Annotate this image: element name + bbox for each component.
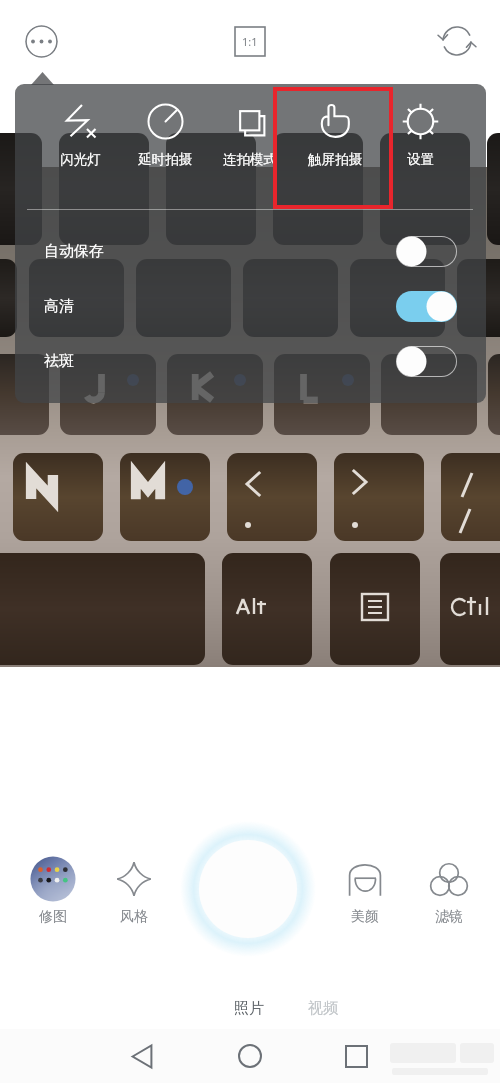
button[interactable]: 自动保存 off xyxy=(396,236,457,267)
button[interactable]: 祛斑 off xyxy=(396,346,457,377)
staticText: 滤镜 xyxy=(435,908,463,926)
button[interactable]: 连拍模式 xyxy=(207,84,293,209)
staticText: 触屏拍摄 xyxy=(308,151,362,168)
button[interactable]: 照片 xyxy=(222,994,275,1022)
staticText: 延时拍摄 xyxy=(138,151,192,168)
staticText: 自动保存 xyxy=(44,242,104,261)
button[interactable]: More options xyxy=(25,25,58,58)
button[interactable]: 自动保存 xyxy=(15,224,486,279)
button[interactable]: 高清 xyxy=(15,279,486,334)
staticText: 视频 xyxy=(308,999,338,1018)
staticText: 美颜 xyxy=(351,908,379,926)
button[interactable]: 视频 xyxy=(296,994,349,1022)
staticText: 闪光灯 xyxy=(60,151,101,168)
button[interactable]: 修图 xyxy=(22,857,84,926)
button[interactable]: Recents xyxy=(332,1032,380,1080)
button[interactable]: 滤镜 xyxy=(418,857,480,926)
button[interactable]: Back xyxy=(118,1032,166,1080)
button[interactable]: 祛斑 xyxy=(15,334,486,389)
staticText: 1:1 xyxy=(242,34,258,49)
staticText: 设置 xyxy=(407,151,434,168)
button[interactable]: 闪光灯 xyxy=(37,84,123,209)
button[interactable]: 设置 xyxy=(377,84,463,209)
staticText: 祛斑 xyxy=(44,352,74,371)
staticText: 高清 xyxy=(44,297,74,316)
button[interactable]: 风格 xyxy=(103,857,165,926)
button[interactable]: 美颜 xyxy=(334,857,396,926)
button[interactable]: Aspect ratio 1:1 xyxy=(235,27,265,56)
button[interactable]: 高清 on xyxy=(396,291,457,322)
staticText: 连拍模式 xyxy=(223,151,277,168)
staticText: 修图 xyxy=(39,908,67,926)
button[interactable]: Switch camera xyxy=(440,24,474,58)
staticText: 风格 xyxy=(120,908,148,926)
staticText: 照片 xyxy=(234,999,264,1018)
button[interactable]: Shutter xyxy=(178,819,318,959)
button[interactable]: 触屏拍摄 xyxy=(292,84,378,209)
button[interactable]: 延时拍摄 xyxy=(122,84,208,209)
button[interactable]: Home xyxy=(226,1032,274,1080)
